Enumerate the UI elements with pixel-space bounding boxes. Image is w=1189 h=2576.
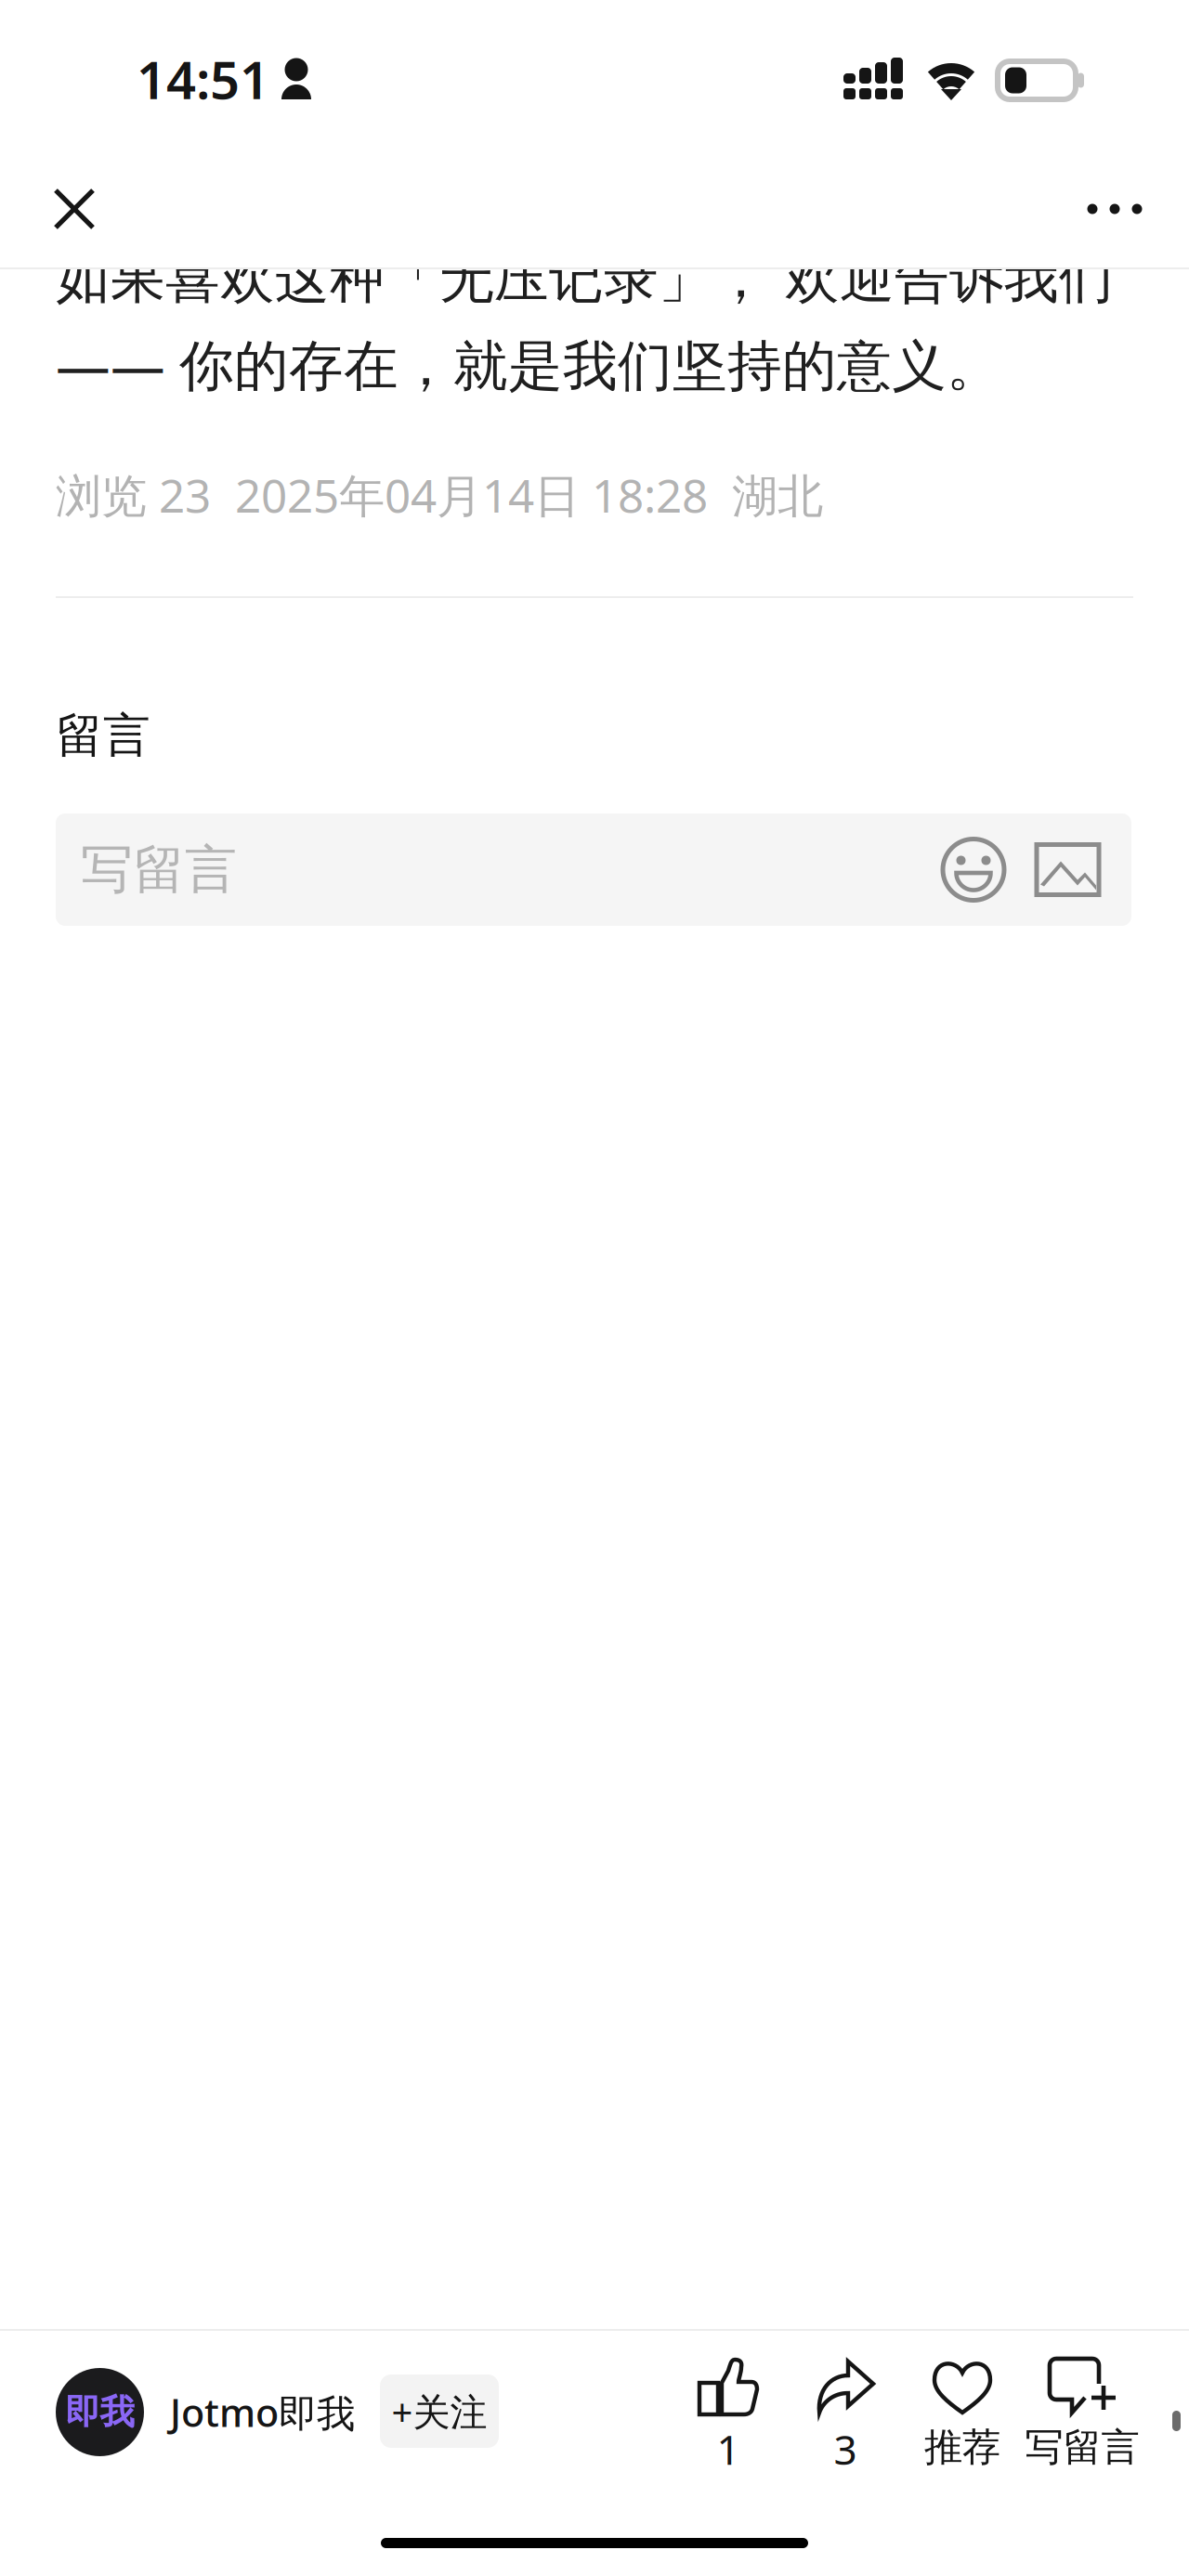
- staticText: 如果喜欢这种「无压记录」， 欢迎告诉我们: [56, 245, 1114, 312]
- staticText: 即我: [65, 2391, 134, 2433]
- button[interactable]: Emoji: [942, 838, 1005, 901]
- staticText: —— 你的存在，就是我们坚持的意义。: [56, 328, 1001, 400]
- staticText: 推荐: [924, 2424, 1000, 2471]
- button[interactable]: +关注: [380, 2374, 499, 2448]
- staticText: 写留言: [81, 838, 237, 902]
- button[interactable]: More options: [1073, 167, 1156, 251]
- button[interactable]: Close: [33, 167, 116, 251]
- staticText: 留言: [56, 707, 150, 764]
- staticText: 浏览 23 2025年04月14日 18:28 湖北: [56, 464, 823, 525]
- button[interactable]: Write comment: [1021, 2359, 1143, 2476]
- staticText: 写留言: [1025, 2424, 1139, 2471]
- staticText: Jotmo即我: [170, 2386, 355, 2438]
- staticText: +关注: [392, 2386, 487, 2436]
- button[interactable]: Add photo: [1037, 845, 1099, 895]
- button[interactable]: Share: [787, 2359, 904, 2476]
- button[interactable]: Jotmo即我: [56, 2368, 362, 2456]
- button[interactable]: Recommend: [904, 2359, 1021, 2476]
- staticText: 1: [717, 2422, 740, 2476]
- staticText: 3: [834, 2422, 857, 2476]
- staticText: 14:51: [137, 44, 269, 113]
- button[interactable]: Like: [670, 2359, 787, 2476]
